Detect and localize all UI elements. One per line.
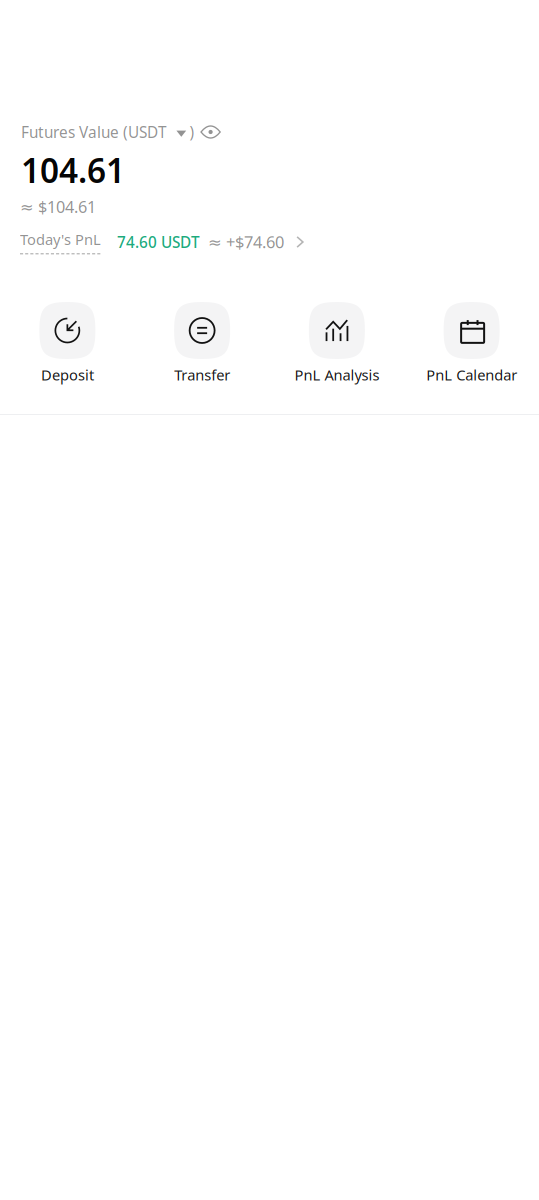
button[interactable]: Hide balance: [195, 122, 221, 142]
staticText: ≈ +$74.60: [208, 231, 284, 253]
button[interactable]: Deposit: [0, 302, 135, 384]
button[interactable]: PnL Analysis: [269, 302, 404, 384]
staticText: Today's PnL: [20, 230, 101, 249]
staticText: Futures Value (USDT: [21, 122, 167, 142]
staticText: Deposit: [41, 365, 94, 384]
staticText: 74.60 USDT: [117, 232, 200, 252]
button[interactable]: PnL Calendar: [404, 302, 539, 384]
staticText: Transfer: [174, 365, 230, 384]
button[interactable]: Today's PnL: [20, 231, 308, 253]
staticText: PnL Calendar: [426, 365, 517, 384]
staticText: ): [190, 122, 195, 142]
staticText: PnL Analysis: [294, 365, 379, 384]
staticText: ≈ $104.61: [20, 196, 96, 218]
staticText: 104.61: [21, 148, 125, 192]
button[interactable]: Transfer: [135, 302, 270, 384]
